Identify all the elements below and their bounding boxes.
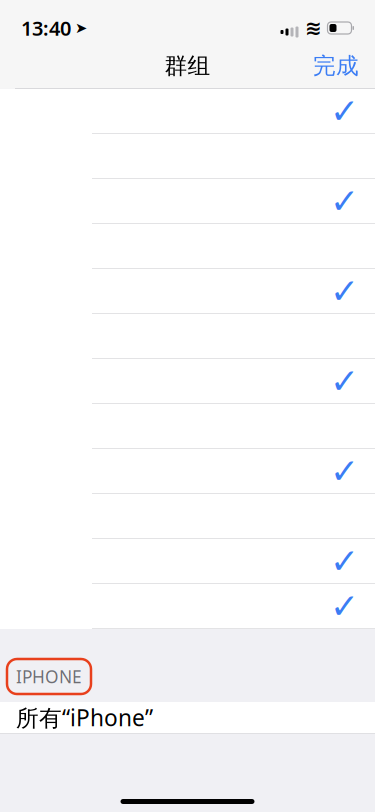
button[interactable]: Group	[0, 404, 375, 449]
button[interactable]: Group	[0, 494, 375, 539]
staticText: ✓	[330, 452, 359, 491]
button[interactable]: 完成	[297, 41, 375, 91]
staticText: ✓	[330, 92, 359, 131]
staticText: ≋	[305, 17, 322, 39]
staticText: ✓	[330, 362, 359, 401]
button[interactable]: Group selected	[0, 584, 375, 629]
button[interactable]: Group selected	[0, 89, 375, 134]
staticText: 完成	[313, 52, 359, 80]
button[interactable]: Group selected	[0, 359, 375, 404]
button[interactable]: Group	[0, 224, 375, 269]
staticText: 群组	[164, 52, 210, 80]
staticText: ✓	[330, 587, 359, 626]
button[interactable]: Group selected	[0, 449, 375, 494]
button[interactable]: Group selected	[0, 269, 375, 314]
staticText: 13:40	[21, 15, 71, 41]
button[interactable]: Group selected	[0, 539, 375, 584]
button[interactable]: 所有“iPhone”	[0, 702, 375, 733]
button[interactable]: Group	[0, 134, 375, 179]
staticText: ✓	[330, 542, 359, 581]
staticText: ➤	[75, 20, 87, 36]
staticText: ✓	[330, 182, 359, 221]
staticText: IPHONE	[16, 665, 82, 688]
button[interactable]: Group selected	[0, 179, 375, 224]
staticText: ✓	[330, 272, 359, 311]
button[interactable]: Group	[0, 314, 375, 359]
staticText: 所有“iPhone”	[16, 702, 153, 733]
